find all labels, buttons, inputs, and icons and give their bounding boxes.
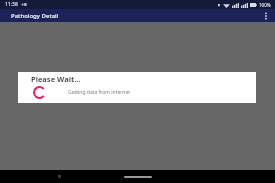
button[interactable]: More options (260, 10, 272, 22)
button[interactable]: Home (124, 176, 152, 178)
button[interactable]: Please Wait... (18, 72, 256, 103)
staticText: Pathology Detail (11, 12, 59, 20)
staticText: Getting data from internet (68, 89, 131, 96)
staticText: 100% (259, 2, 271, 8)
staticText: Please Wait... (31, 74, 81, 84)
staticText: 11:38 (5, 1, 18, 8)
